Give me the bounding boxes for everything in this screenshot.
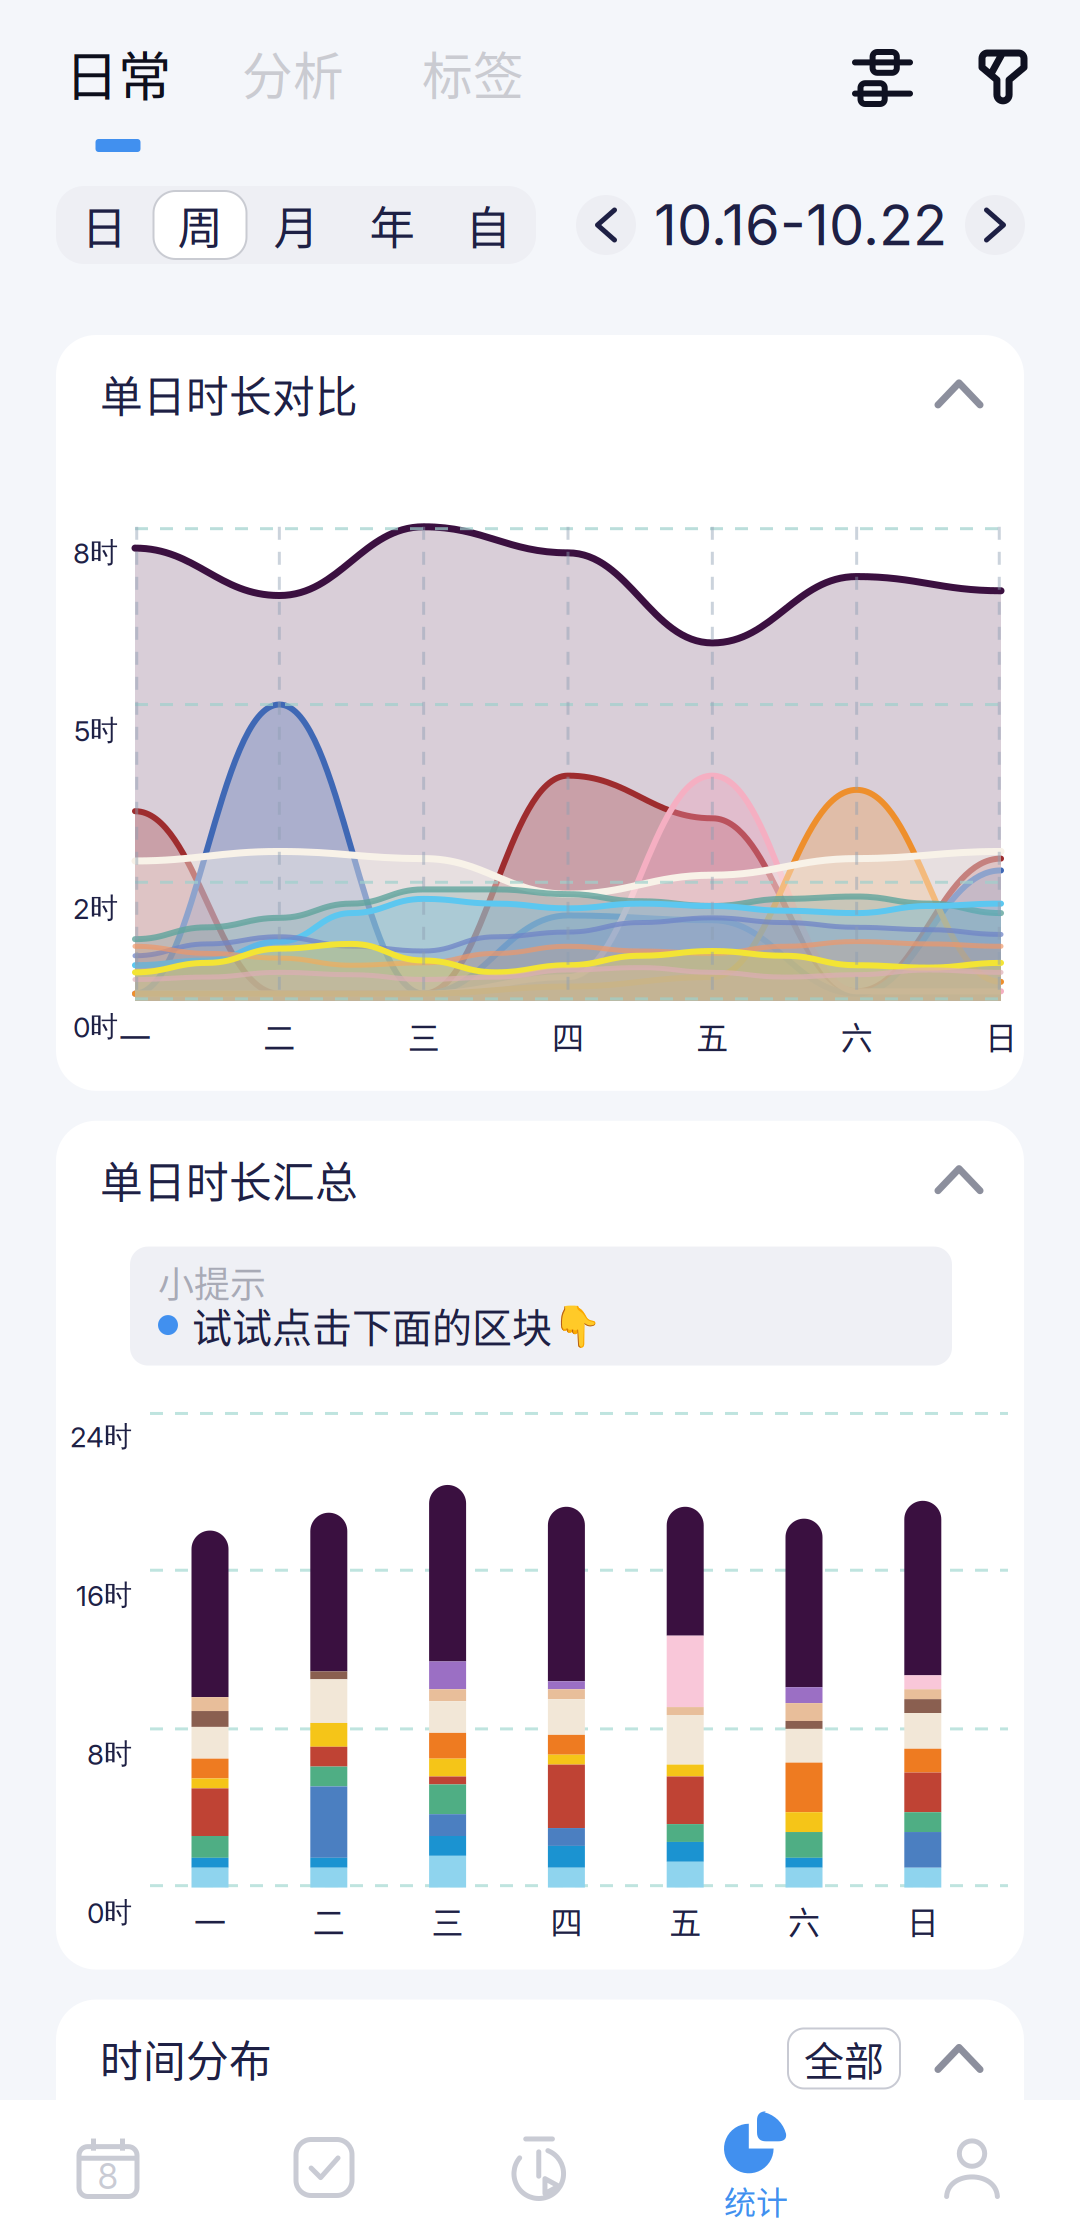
button[interactable]: Collapse section	[924, 2033, 994, 2083]
staticText: 0时	[73, 1009, 118, 1044]
staticText: 六	[841, 1013, 873, 1059]
button[interactable]: Calendar	[0, 2122, 216, 2212]
button[interactable]: 年	[344, 186, 440, 264]
button[interactable]: Timer	[432, 2122, 648, 2212]
staticText: 单日时长汇总	[100, 1149, 358, 1211]
staticText: 周	[177, 192, 222, 258]
staticText: 5时	[74, 713, 118, 748]
button[interactable]: Previous week	[576, 195, 636, 255]
staticText: 24时	[70, 1419, 132, 1454]
button[interactable]: Tasks	[216, 2122, 432, 2212]
staticText: 日	[985, 1013, 1017, 1059]
staticText: 小提示	[158, 1256, 266, 1308]
button[interactable]: Collapse section	[924, 1155, 994, 1205]
button[interactable]: Sort options	[855, 46, 910, 104]
button[interactable]	[150, 1412, 187, 1888]
button[interactable]	[150, 1412, 187, 1888]
staticText: 自	[465, 192, 510, 258]
staticText: 16时	[76, 1578, 132, 1613]
staticText: 一	[119, 1013, 151, 1059]
button[interactable]: 统计	[648, 2111, 864, 2224]
button[interactable]: Profile	[864, 2122, 1080, 2212]
button[interactable]: Next week	[965, 195, 1025, 255]
staticText: 日	[81, 192, 126, 258]
button[interactable]: 日常	[66, 46, 170, 164]
staticText: 日	[907, 1897, 939, 1944]
staticText: 0时	[87, 1895, 132, 1930]
button[interactable]	[150, 1412, 187, 1888]
staticText: 10.16-10.22	[654, 191, 947, 259]
staticText: 8时	[87, 1736, 132, 1772]
staticText: 单日时长对比	[100, 363, 358, 425]
staticText: 四	[550, 1897, 582, 1944]
button[interactable]: 周	[152, 186, 248, 264]
button[interactable]: Collapse section	[924, 369, 994, 419]
staticText: 五	[696, 1013, 728, 1059]
staticText: 六	[788, 1897, 820, 1944]
button[interactable]: 全部	[788, 2028, 900, 2088]
staticText: 二	[263, 1013, 295, 1059]
button[interactable]: 日	[56, 186, 152, 264]
staticText: 统计	[724, 2177, 788, 2224]
staticText: 三	[408, 1013, 440, 1059]
button[interactable]: 标签	[422, 46, 524, 100]
staticText: 试试点击下面的区块👇	[192, 1296, 602, 1354]
button[interactable]: 月	[248, 186, 344, 264]
button[interactable]	[150, 1412, 187, 1888]
staticText: 标签	[422, 36, 524, 110]
staticText: 三	[432, 1897, 464, 1944]
staticText: 分析	[242, 36, 344, 110]
staticText: 8时	[73, 535, 118, 570]
button[interactable]: 自	[440, 186, 536, 264]
staticText: 一	[194, 1897, 226, 1944]
staticText: 2时	[73, 891, 118, 926]
button[interactable]	[150, 1412, 187, 1888]
staticText: 二	[313, 1897, 345, 1944]
staticText: 日常	[65, 34, 171, 112]
staticText: 月	[273, 192, 318, 258]
staticText: 四	[552, 1013, 584, 1059]
button[interactable]: Filter	[982, 46, 1024, 101]
staticText: 时间分布	[100, 2028, 272, 2089]
staticText: 8	[97, 2155, 118, 2197]
staticText: 全部	[804, 2029, 884, 2087]
staticText: 年	[369, 192, 414, 258]
button[interactable]	[150, 1412, 187, 1888]
button[interactable]	[150, 1412, 187, 1888]
staticText: 五	[669, 1897, 701, 1944]
button[interactable]: 分析	[242, 46, 344, 100]
